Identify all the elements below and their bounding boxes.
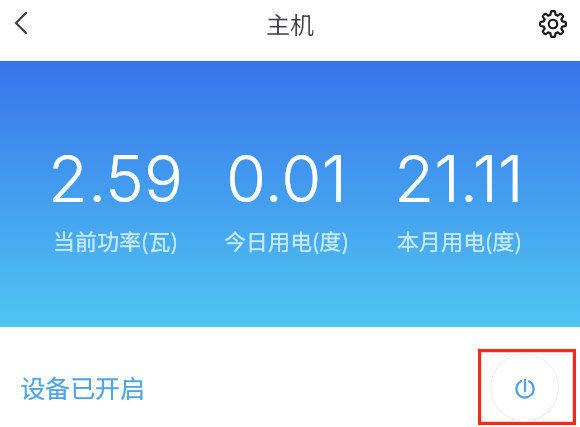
button[interactable]: Power toggle <box>478 349 576 425</box>
staticText: 主机 <box>266 6 314 41</box>
staticText: 当前功率(瓦) <box>53 224 178 256</box>
staticText: 21.11 <box>394 139 524 218</box>
staticText: 0.01 <box>226 139 347 218</box>
staticText: 今日用电(度) <box>224 224 349 256</box>
button[interactable]: Settings <box>531 2 575 46</box>
staticText: 本月用电(度) <box>397 224 522 256</box>
staticText: 2.59 <box>48 139 183 218</box>
staticText: 设备已开启 <box>20 369 146 405</box>
button[interactable]: Back <box>0 1 41 45</box>
button[interactable]: Power <box>490 353 559 422</box>
